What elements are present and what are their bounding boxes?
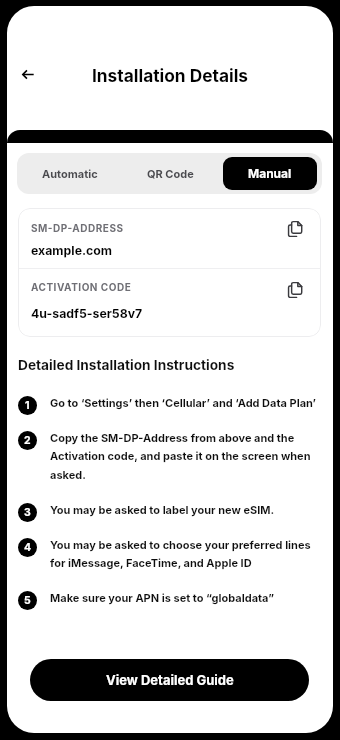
staticText: 5	[24, 594, 31, 607]
staticText: Go to ‘Settings’ then ‘Cellular’ and ‘Ad…	[50, 396, 317, 409]
staticText: Installation Details	[92, 65, 249, 86]
staticText: 4u-sadf5-ser58v7	[31, 306, 143, 321]
staticText: SM-DP-ADDRESS	[31, 222, 124, 234]
staticText: Manual	[248, 166, 292, 181]
staticText: Detailed Installation Instructions	[18, 357, 235, 374]
button[interactable]: Copy SM-DP-ADDRESS	[281, 215, 309, 243]
button[interactable]: QR Code	[123, 157, 217, 190]
staticText: 2	[24, 434, 31, 447]
staticText: Copy the SM-DP-Address from above and th…	[50, 431, 321, 482]
staticText: Make sure your APN is set to “globaldata…	[50, 591, 275, 604]
button[interactable]: Copy ACTIVATION CODE	[281, 276, 309, 304]
button[interactable]: Manual	[223, 157, 317, 190]
button[interactable]: Automatic	[22, 157, 117, 190]
button[interactable]: Back	[12, 58, 44, 90]
staticText: Automatic	[42, 167, 98, 180]
staticText: 4	[24, 541, 32, 554]
staticText: ACTIVATION CODE	[31, 281, 132, 293]
staticText: You may be asked to choose your preferre…	[50, 538, 321, 570]
staticText: 1	[25, 399, 30, 412]
staticText: You may be asked to label your new eSIM.	[50, 503, 275, 516]
staticText: example.com	[31, 243, 113, 258]
staticText: QR Code	[147, 167, 194, 180]
staticText: View Detailed Guide	[106, 672, 234, 688]
staticText: 3	[24, 506, 31, 519]
button[interactable]: View Detailed Guide	[30, 659, 309, 701]
